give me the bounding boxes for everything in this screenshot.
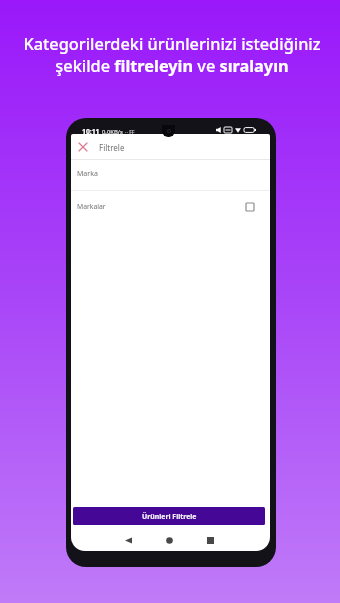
other: Close	[79, 143, 87, 151]
staticText: Filtrele	[99, 142, 125, 153]
staticText: ·· FF	[125, 128, 135, 135]
button[interactable]: Marka	[71, 159, 270, 190]
button[interactable]: Home	[163, 534, 175, 546]
staticText: Kategorilerdeki ürünlerinizi istediğiniz	[23, 33, 321, 55]
other: Back	[125, 537, 132, 544]
staticText: 10:11	[82, 127, 100, 136]
staticText: 0,0KB/s	[102, 128, 123, 136]
button[interactable]: Ürünleri Filtrele	[73, 507, 265, 525]
staticText: şekilde filtreleyin ve sıralayın	[55, 55, 289, 77]
staticText: Marka	[77, 169, 98, 179]
button[interactable]: Markalar	[71, 191, 270, 221]
button[interactable]: Back	[122, 534, 134, 546]
other: Home	[166, 537, 173, 544]
button[interactable]: Recents	[204, 534, 216, 546]
button[interactable]: Close	[71, 134, 270, 159]
staticText: Ürünleri Filtrele	[142, 512, 197, 521]
staticText: Markalar	[77, 202, 106, 211]
